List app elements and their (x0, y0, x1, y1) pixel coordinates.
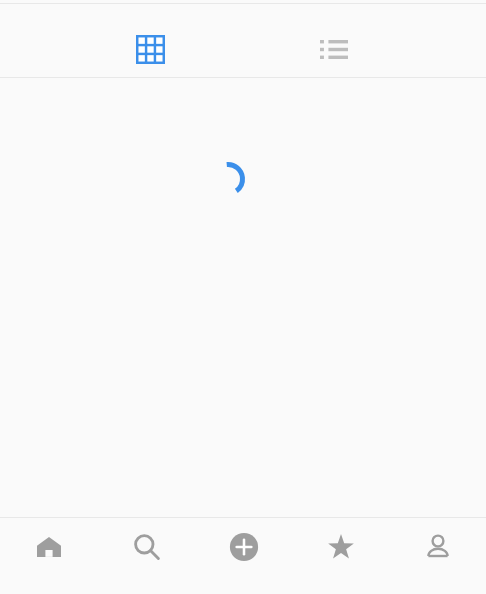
button[interactable]: Grid view (126, 25, 174, 73)
button[interactable]: Home (0, 518, 98, 594)
button[interactable]: Favorites (292, 518, 389, 594)
button[interactable]: Profile (389, 518, 486, 594)
button[interactable]: List view (310, 25, 358, 73)
button[interactable]: Search (98, 518, 195, 594)
button[interactable]: Add (195, 518, 292, 594)
